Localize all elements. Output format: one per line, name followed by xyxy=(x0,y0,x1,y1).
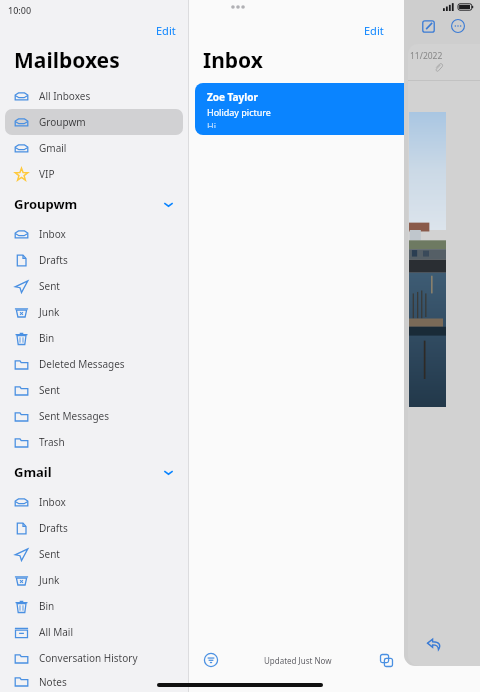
staticText: All Inboxes xyxy=(39,89,91,103)
staticText: Drafts xyxy=(39,521,68,535)
button[interactable]: Gmail xyxy=(5,135,183,161)
staticText: 11/2022 xyxy=(410,50,443,62)
staticText: Drafts xyxy=(39,253,68,267)
staticText: All Mail xyxy=(39,625,73,639)
button[interactable]: Junk xyxy=(5,299,183,325)
staticText: Bin xyxy=(39,599,55,613)
button[interactable]: Zoe Taylor xyxy=(195,83,474,135)
staticText: Sent xyxy=(39,547,60,561)
staticText: Holiday picture xyxy=(207,106,271,118)
staticText: 10:00 xyxy=(8,4,32,16)
staticText: Sent Messages xyxy=(39,409,109,423)
button[interactable]: Gmail xyxy=(0,455,188,489)
button[interactable]: Drafts xyxy=(5,515,183,541)
staticText: Updated Just Now xyxy=(264,655,332,666)
staticText: Mailboxes xyxy=(14,46,120,75)
button[interactable]: Filter xyxy=(199,648,223,672)
staticText: Hi xyxy=(207,120,216,128)
staticText: Junk xyxy=(39,573,60,587)
button[interactable]: Inbox xyxy=(5,221,183,247)
staticText: Sent xyxy=(39,383,60,397)
button[interactable]: Sent xyxy=(5,377,183,403)
button[interactable]: Groupwm xyxy=(5,109,183,135)
staticText: Zoe Taylor xyxy=(207,90,258,104)
staticText: Notes xyxy=(39,675,67,689)
button[interactable]: Compose xyxy=(418,16,438,36)
staticText: Conversation History xyxy=(39,651,138,665)
staticText: Inbox xyxy=(203,46,263,75)
staticText: Sent xyxy=(39,279,60,293)
button[interactable]: Drafts xyxy=(5,247,183,273)
button[interactable]: Deleted Messages xyxy=(5,351,183,377)
button[interactable]: Sent Messages xyxy=(5,403,183,429)
button[interactable]: Edit xyxy=(364,23,384,38)
button[interactable]: All Mail xyxy=(5,619,183,645)
staticText: Gmail xyxy=(39,141,67,155)
button[interactable]: Sent xyxy=(5,273,183,299)
button[interactable]: Junk xyxy=(5,567,183,593)
staticText: VIP xyxy=(39,167,55,181)
button[interactable]: Inbox xyxy=(5,489,183,515)
staticText: Groupwm xyxy=(39,115,86,129)
button[interactable]: Compose xyxy=(374,648,398,672)
button[interactable]: Trash xyxy=(5,429,183,455)
button[interactable]: All Inboxes xyxy=(5,83,183,109)
staticText: Inbox xyxy=(39,227,66,241)
staticText: Gmail xyxy=(14,463,52,481)
button[interactable]: VIP xyxy=(5,161,183,187)
button[interactable]: Bin xyxy=(5,593,183,619)
staticText: Bin xyxy=(39,331,55,345)
button[interactable]: Reply xyxy=(424,634,444,654)
button[interactable]: Sent xyxy=(5,541,183,567)
staticText: Inbox xyxy=(39,495,66,509)
staticText: Deleted Messages xyxy=(39,357,125,371)
button[interactable]: Edit xyxy=(156,23,176,38)
button[interactable]: More xyxy=(448,16,468,36)
staticText: Trash xyxy=(39,435,65,449)
button[interactable]: Notes xyxy=(5,671,183,692)
button[interactable]: Bin xyxy=(5,325,183,351)
staticText: Groupwm xyxy=(14,195,78,213)
staticText: Junk xyxy=(39,305,60,319)
button[interactable]: Groupwm xyxy=(0,187,188,221)
button[interactable]: Conversation History xyxy=(5,645,183,671)
